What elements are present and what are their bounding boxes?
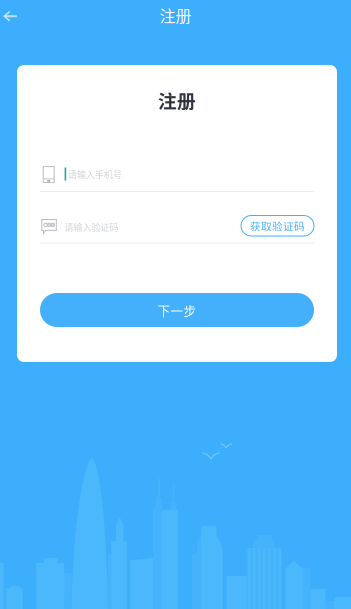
button[interactable]: 下一步 [40, 293, 314, 327]
staticText: 下一步 [157, 301, 196, 319]
button[interactable]: 获取验证码 [241, 215, 314, 236]
staticText: 请输入验证码 [64, 220, 118, 233]
staticText: 获取验证码 [250, 218, 305, 233]
staticText: 注册 [158, 86, 196, 113]
staticText: 请输入手机号 [68, 167, 122, 181]
staticText: 注册 [159, 3, 191, 27]
button[interactable]: Back [0, 2, 29, 34]
